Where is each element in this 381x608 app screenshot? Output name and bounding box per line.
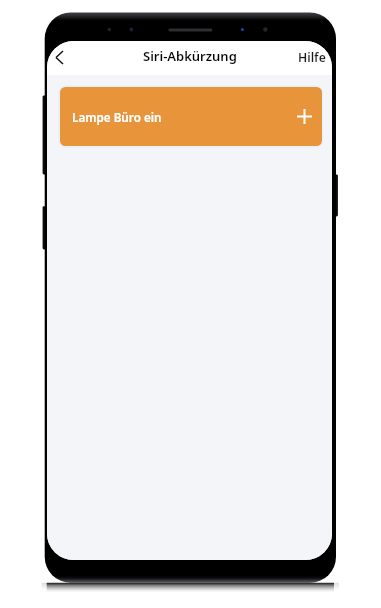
button[interactable]: Hilfe: [292, 42, 332, 73]
button[interactable]: Zurück: [47, 41, 71, 75]
staticText: Hilfe: [298, 49, 326, 66]
staticText: Lampe Büro ein: [72, 109, 162, 125]
staticText: Siri-Abkürzung: [143, 47, 237, 65]
button[interactable]: Lampe Büro ein: [60, 87, 322, 146]
